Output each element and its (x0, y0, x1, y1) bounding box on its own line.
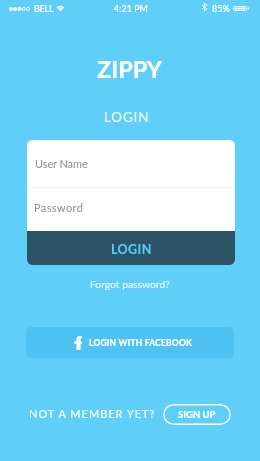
button[interactable]: SIGN UP (163, 404, 231, 425)
button[interactable]: User Name (27, 140, 235, 187)
other: Facebook (74, 336, 82, 350)
staticText: User Name (35, 157, 88, 170)
staticText: SIGN UP (178, 409, 216, 420)
staticText: LOGIN WITH FACEBOOK (89, 338, 192, 348)
staticText: ZIPPY (97, 55, 163, 83)
staticText: LOGIN (104, 109, 150, 125)
staticText: 4:21 PM (114, 3, 148, 14)
button[interactable]: Password (27, 188, 235, 231)
staticText: LOGIN (111, 242, 152, 257)
button[interactable]: Forgot password? (82, 275, 178, 293)
staticText: NOT A MEMBER YET? (29, 407, 156, 420)
button[interactable]: Facebook (26, 327, 234, 358)
staticText: BELL (34, 3, 54, 14)
staticText: Password (34, 201, 84, 214)
button[interactable]: LOGIN (27, 231, 235, 265)
staticText: Forgot password? (90, 278, 170, 290)
staticText: 85% (212, 3, 230, 14)
